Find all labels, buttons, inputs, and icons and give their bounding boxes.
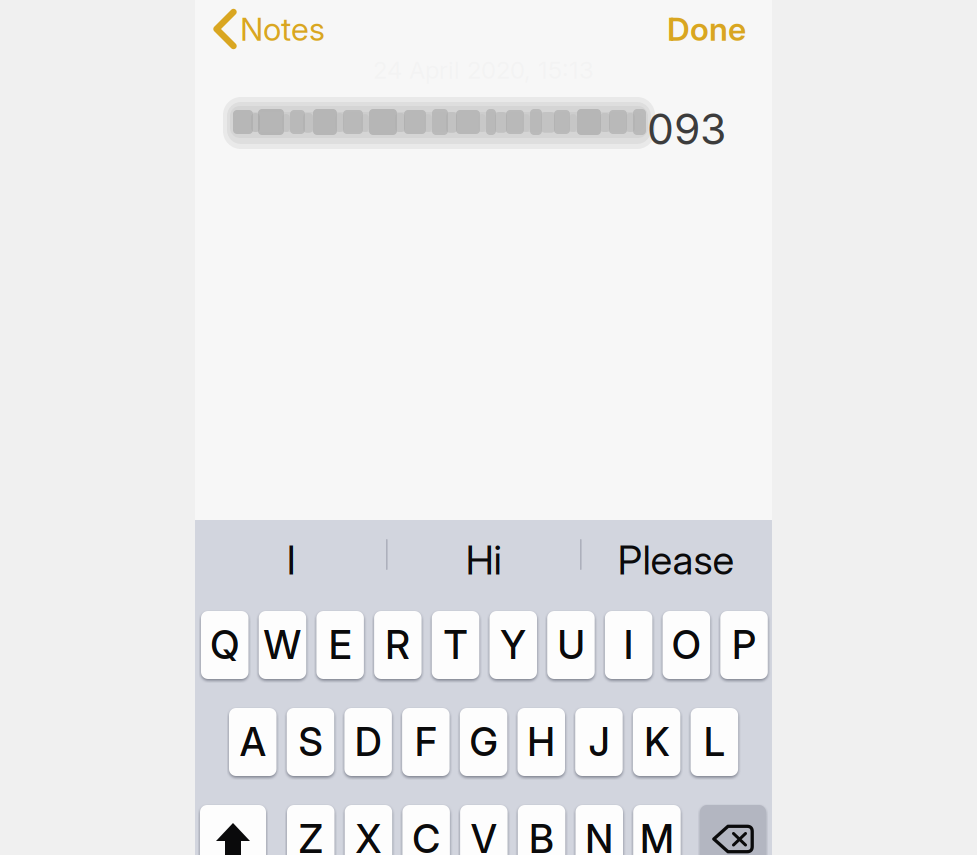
staticText: L — [704, 719, 725, 765]
staticText: W — [263, 622, 301, 668]
button[interactable]: Y — [489, 611, 537, 679]
button[interactable]: B — [518, 805, 565, 855]
staticText: B — [529, 816, 554, 855]
staticText: Z — [299, 816, 323, 855]
staticText: Done — [667, 10, 746, 48]
staticText: F — [415, 719, 437, 765]
button[interactable]: R — [374, 611, 422, 679]
staticText: D — [355, 719, 382, 765]
button[interactable]: V — [460, 805, 508, 855]
staticText: S — [298, 719, 322, 765]
button[interactable]: E — [316, 611, 364, 679]
staticText: Q — [210, 622, 239, 668]
staticText: T — [444, 622, 468, 668]
staticText: C — [412, 816, 440, 855]
staticText: X — [355, 816, 381, 855]
staticText: E — [329, 622, 352, 668]
button[interactable]: K — [633, 708, 680, 776]
staticText: Hi — [465, 536, 501, 584]
staticText: I — [624, 622, 634, 668]
button[interactable]: A — [229, 708, 276, 776]
button[interactable]: Please — [580, 520, 772, 600]
button[interactable]: H — [517, 708, 565, 776]
staticText: Please — [617, 536, 734, 584]
staticText: U — [557, 622, 584, 668]
button[interactable]: F — [402, 708, 450, 776]
button[interactable]: I — [195, 520, 387, 600]
button[interactable]: D — [344, 708, 392, 776]
staticText: R — [385, 622, 410, 668]
staticText: H — [527, 719, 555, 765]
button[interactable]: L — [691, 708, 738, 776]
staticText: M — [640, 816, 674, 855]
button[interactable]: W — [259, 611, 306, 679]
button[interactable]: X — [345, 805, 392, 855]
button[interactable]: S — [287, 708, 334, 776]
button[interactable]: J — [575, 708, 623, 776]
button[interactable]: Hi — [387, 520, 580, 600]
button[interactable]: U — [547, 611, 595, 679]
button[interactable]: G — [460, 708, 507, 776]
staticText: K — [644, 719, 669, 765]
button[interactable]: O — [663, 611, 710, 679]
staticText: V — [471, 816, 497, 855]
button[interactable]: Shift — [200, 805, 266, 855]
button[interactable]: C — [402, 805, 450, 855]
button[interactable]: Done — [626, 1, 746, 57]
staticText: G — [470, 719, 498, 765]
staticText: A — [240, 719, 266, 765]
button[interactable]: M — [633, 805, 681, 855]
button[interactable]: I — [605, 611, 652, 679]
button[interactable]: N — [575, 805, 623, 855]
button[interactable]: Z — [287, 805, 334, 855]
staticText: I — [286, 536, 295, 584]
button[interactable]: P — [720, 611, 768, 679]
button[interactable]: T — [432, 611, 479, 679]
staticText: N — [585, 816, 613, 855]
staticText: P — [732, 622, 756, 668]
staticText: 093 — [647, 103, 726, 155]
button[interactable]: Q — [201, 611, 248, 679]
button[interactable]: Notes — [211, 1, 371, 57]
staticText: Y — [500, 622, 526, 668]
button[interactable]: Delete — [700, 805, 766, 855]
staticText: Notes — [240, 10, 325, 48]
staticText: J — [588, 719, 609, 765]
staticText: O — [672, 622, 701, 668]
